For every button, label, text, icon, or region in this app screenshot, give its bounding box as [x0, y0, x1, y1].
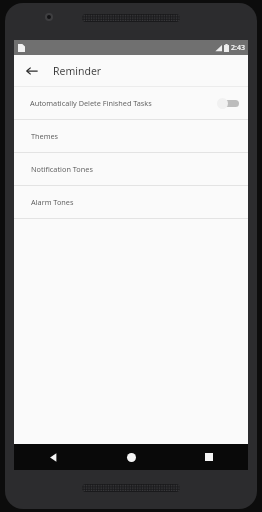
staticText: Themes	[31, 131, 59, 141]
button[interactable]: Recent apps	[170, 444, 248, 470]
staticText: Notification Tones	[31, 164, 93, 174]
staticText: Automatically Delete Finished Tasks	[30, 98, 217, 108]
button[interactable]: Automatically delete finished tasks	[217, 96, 239, 110]
staticText: Alarm Tones	[31, 197, 74, 207]
button[interactable]: Automatically Delete Finished Tasks	[14, 87, 248, 119]
button[interactable]: Notification Tones	[14, 153, 248, 185]
button[interactable]: Home	[92, 444, 170, 470]
staticText: 2:43	[231, 43, 245, 53]
button[interactable]: Back	[14, 444, 92, 470]
button[interactable]: Navigate up	[19, 58, 44, 83]
staticText: Reminder	[53, 64, 102, 78]
button[interactable]: Themes	[14, 120, 248, 152]
button[interactable]: Alarm Tones	[14, 186, 248, 218]
